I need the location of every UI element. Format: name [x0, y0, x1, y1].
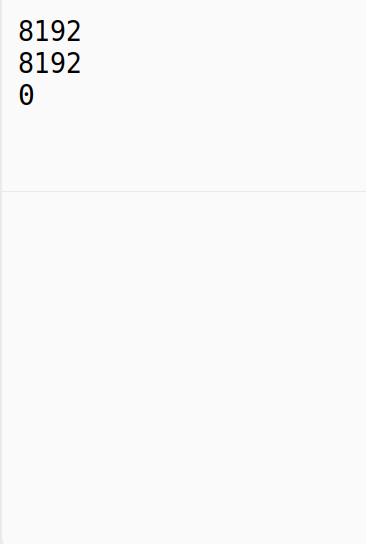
- staticText: 0: [18, 79, 35, 112]
- staticText: 8192: [18, 47, 82, 80]
- button[interactable]: 8192: [2, 0, 366, 191]
- staticText: 8192: [18, 15, 82, 48]
